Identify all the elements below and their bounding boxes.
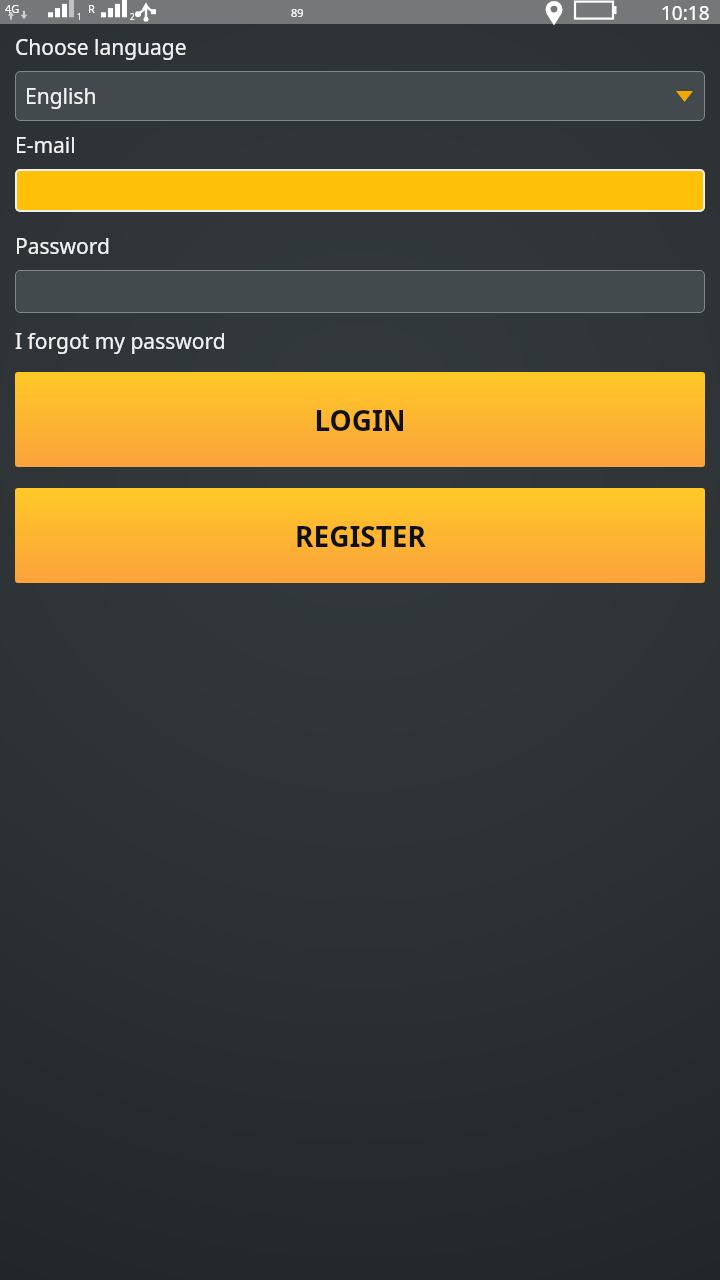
staticText: 2 xyxy=(130,11,135,22)
button[interactable]: REGISTER xyxy=(15,488,705,583)
staticText: English xyxy=(25,82,97,111)
staticText: Password xyxy=(15,232,110,261)
staticText: 89 xyxy=(291,5,304,20)
button[interactable] xyxy=(15,270,705,313)
staticText: Choose language xyxy=(15,33,187,62)
staticText: 1 xyxy=(77,11,82,22)
button[interactable]: I forgot my password xyxy=(15,327,226,356)
staticText: I forgot my password xyxy=(15,327,226,356)
staticText: 10:18 xyxy=(661,0,710,24)
staticText: REGISTER xyxy=(295,517,426,555)
staticText: 4G xyxy=(5,1,20,16)
button[interactable] xyxy=(15,169,705,212)
staticText: LOGIN xyxy=(314,401,406,439)
staticText: E-mail xyxy=(15,131,76,160)
button[interactable]: English xyxy=(15,71,705,121)
staticText: R xyxy=(88,1,95,16)
button[interactable]: LOGIN xyxy=(15,372,705,467)
